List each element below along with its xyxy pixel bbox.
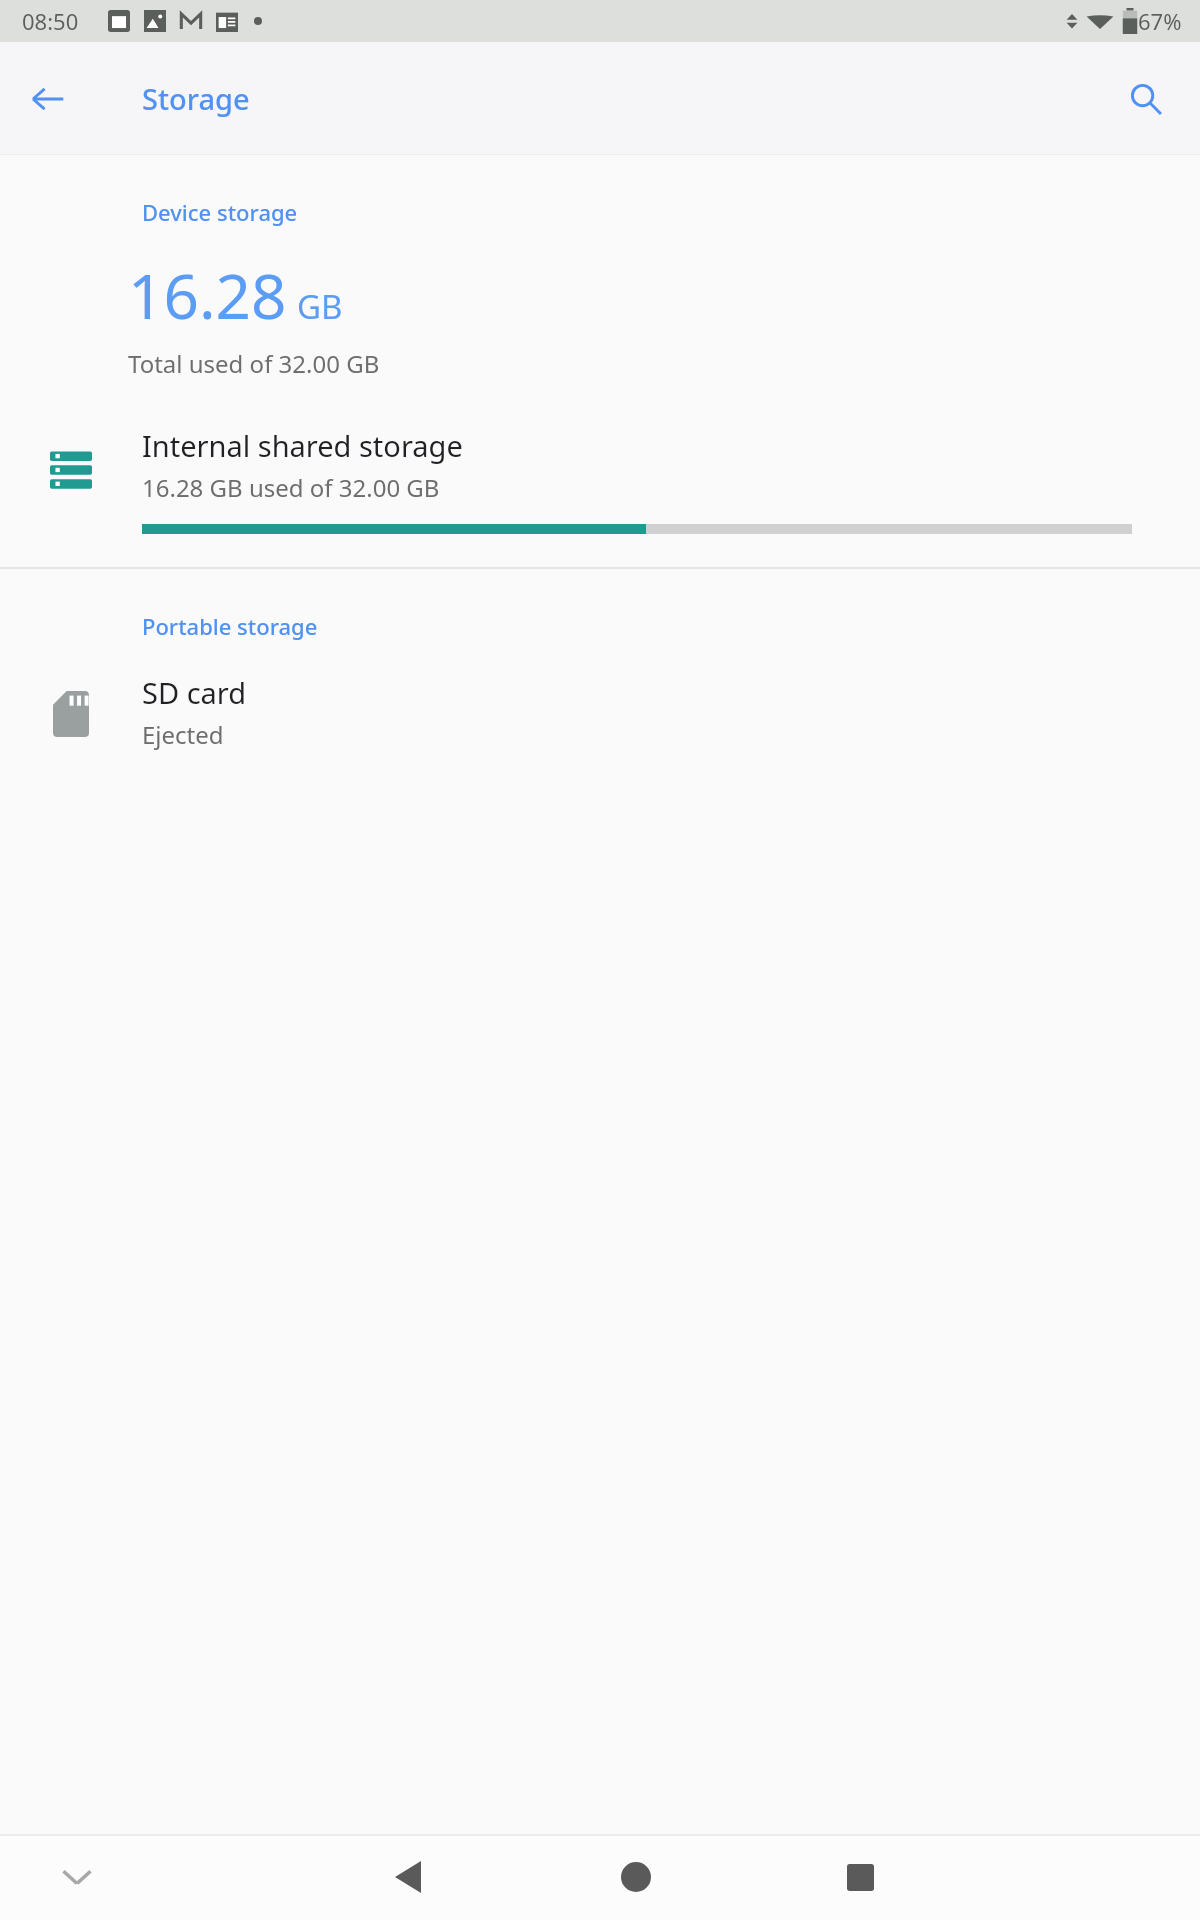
staticText: 08:50 bbox=[22, 6, 79, 36]
staticText: Portable storage bbox=[142, 611, 318, 641]
staticText: 16.28 bbox=[128, 253, 287, 337]
button[interactable]: Home bbox=[601, 1842, 671, 1912]
button[interactable]: Back bbox=[14, 65, 82, 133]
staticText: GB bbox=[297, 284, 343, 329]
staticText: SD card bbox=[142, 673, 247, 712]
button[interactable]: Search bbox=[1112, 65, 1180, 133]
button[interactable]: Back bbox=[373, 1842, 443, 1912]
staticText: Ejected bbox=[142, 718, 224, 751]
staticText: Total used of 32.00 GB bbox=[128, 347, 380, 380]
button[interactable]: Internal shared storage bbox=[0, 426, 1200, 534]
staticText: Internal shared storage bbox=[142, 426, 463, 465]
button[interactable]: Hide bbox=[42, 1842, 112, 1912]
staticText: 67% bbox=[1138, 6, 1182, 36]
button[interactable]: SD card bbox=[0, 673, 1200, 755]
staticText: Storage bbox=[142, 79, 250, 118]
staticText: Device storage bbox=[142, 197, 298, 227]
button[interactable]: Recents bbox=[825, 1842, 895, 1912]
staticText: 16.28 GB used of 32.00 GB bbox=[142, 471, 440, 504]
